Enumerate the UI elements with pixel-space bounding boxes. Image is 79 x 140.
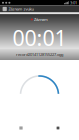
button[interactable]: Stop: [51, 122, 65, 134]
staticText: Záznam zvuku: [8, 6, 33, 12]
staticText: Záznam: [34, 17, 48, 22]
staticText: 00:01: [12, 24, 66, 52]
staticText: 3:01: [70, 0, 77, 5]
staticText: record20141128155227.ogg: [16, 52, 63, 57]
button[interactable]: Pause: [14, 122, 28, 134]
